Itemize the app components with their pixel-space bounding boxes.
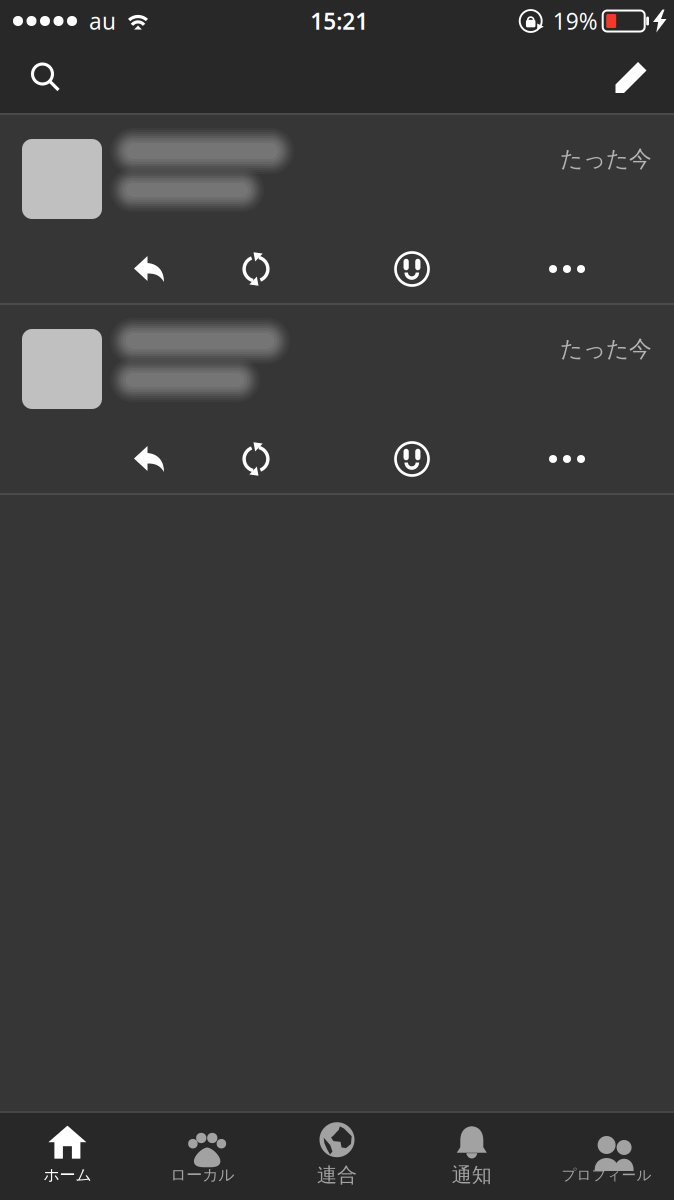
button[interactable]: Boost [206,433,306,485]
staticText: 19% [553,6,598,36]
staticText: 連合 [317,1163,357,1187]
staticText: 通知 [452,1163,492,1187]
button[interactable]: React [362,243,462,295]
button[interactable]: React [362,433,462,485]
button[interactable]: More [517,243,617,295]
button[interactable]: Reply [99,243,199,295]
staticText: au [89,6,116,36]
button[interactable]: 連合 [270,1113,404,1200]
staticText: ローカル [170,1165,234,1185]
button[interactable]: Reply [99,433,199,485]
button[interactable]: More [517,433,617,485]
button[interactable]: ホーム [0,1113,135,1200]
button[interactable]: Compose [601,43,661,111]
button[interactable]: Search [16,43,76,111]
staticText: ホーム [43,1165,91,1185]
staticText: プロフィール [562,1166,652,1184]
staticText: たった今 [560,145,652,173]
staticText: たった今 [560,335,652,363]
button[interactable]: ローカル [135,1113,270,1200]
button[interactable]: Boost [206,243,306,295]
button[interactable]: 通知 [404,1113,539,1200]
button[interactable]: プロフィール [539,1113,674,1200]
staticText: 15:21 [310,6,368,36]
